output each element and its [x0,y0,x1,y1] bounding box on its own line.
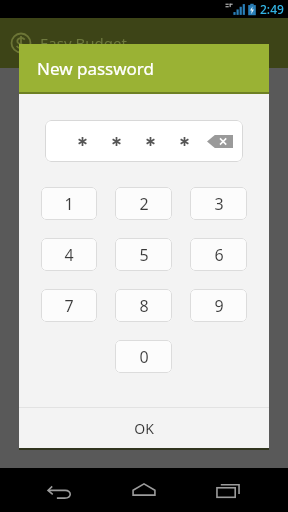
button[interactable]: 3 [190,187,247,220]
button[interactable]: Recent apps [204,468,252,512]
button[interactable]: Backspace [207,135,233,148]
staticText: 2:49 [260,1,284,17]
button[interactable]: 2 [115,187,172,220]
staticText: 9 [214,295,224,317]
staticText: New password [37,57,155,80]
button[interactable]: Home [120,468,168,512]
button[interactable]: 6 [190,238,247,271]
staticText: 6 [214,244,224,266]
button[interactable]: 1 [41,187,97,220]
staticText: 1 [64,193,74,215]
staticText: 0 [139,346,149,368]
button[interactable]: OK [19,408,269,448]
button[interactable]: 5 [115,238,172,271]
button[interactable]: 0 [115,340,172,373]
staticText: 3 [214,193,224,215]
staticText: 4 [64,244,74,266]
staticText: 8 [139,295,149,317]
button[interactable]: 9 [190,289,247,322]
staticText: 7 [64,295,74,317]
button[interactable]: 4 [41,238,97,271]
staticText: 2 [139,193,149,215]
button[interactable]: 8 [115,289,172,322]
staticText: 5 [139,244,149,266]
staticText: OK [134,419,154,438]
button[interactable]: Back [36,468,84,512]
button[interactable]: Backspace [45,120,243,162]
button[interactable]: 7 [41,289,97,322]
staticText: Easy Budget [40,33,127,53]
